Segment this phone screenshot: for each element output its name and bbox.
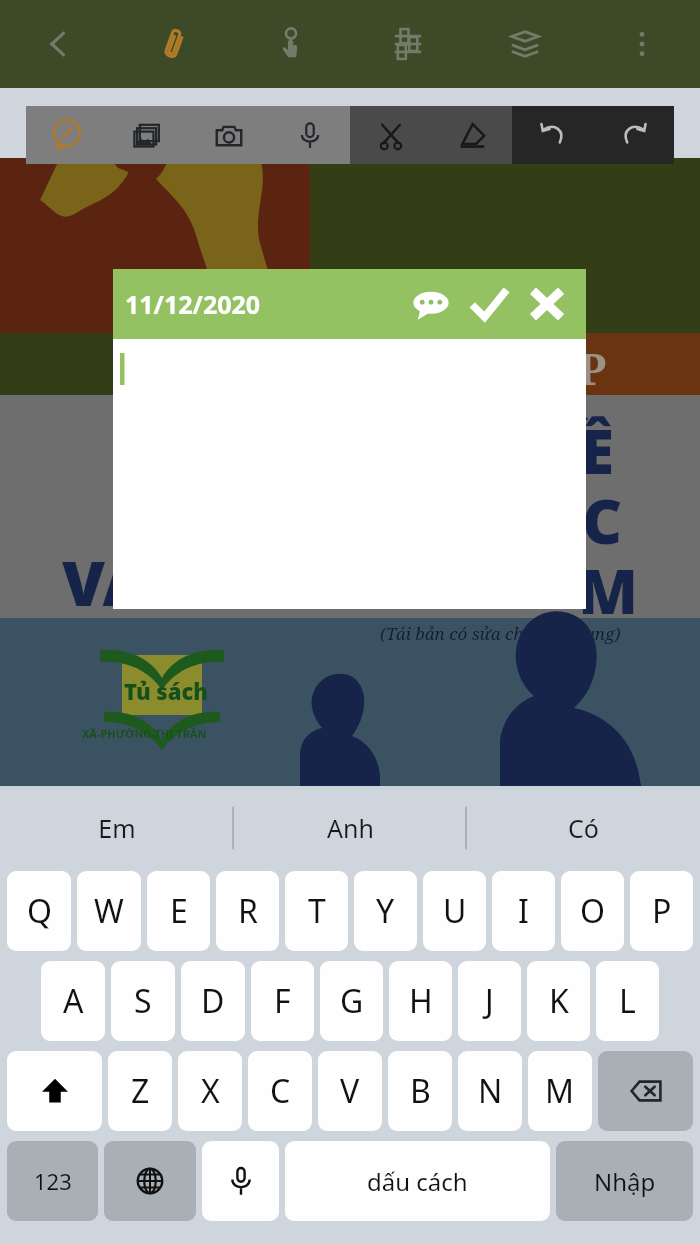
staticText: Y xyxy=(376,889,395,933)
staticText: 123 xyxy=(34,1166,72,1196)
button[interactable]: V xyxy=(318,1051,382,1131)
staticText: P xyxy=(652,889,672,933)
staticText: VA xyxy=(62,540,148,624)
button[interactable]: D xyxy=(181,961,245,1041)
button[interactable]: Nhập xyxy=(556,1141,693,1221)
button[interactable]: More options xyxy=(583,0,700,88)
button[interactable]: C xyxy=(248,1051,312,1131)
button[interactable]: Redo xyxy=(593,106,674,164)
button[interactable]: Camera xyxy=(188,106,269,164)
button[interactable]: Attach xyxy=(116,0,232,88)
staticText: Tủ sách xyxy=(124,676,209,706)
button[interactable]: Draw xyxy=(26,106,107,164)
button[interactable]: K xyxy=(527,961,590,1041)
button[interactable]: H xyxy=(389,961,452,1041)
staticText: M xyxy=(578,548,638,632)
staticText: Anh xyxy=(327,811,374,845)
staticText: T xyxy=(308,889,326,933)
button[interactable]: T xyxy=(285,871,348,951)
staticText: K xyxy=(549,979,569,1023)
staticText: O xyxy=(580,889,605,933)
button[interactable]: Touch mode xyxy=(232,0,349,88)
staticText: S xyxy=(134,979,152,1023)
staticText: M xyxy=(545,1069,575,1113)
button[interactable]: Voice input xyxy=(202,1141,279,1221)
staticText: X xyxy=(201,1069,220,1113)
button[interactable]: A xyxy=(41,961,105,1041)
button[interactable]: F xyxy=(251,961,314,1041)
button[interactable]: Erase xyxy=(431,106,512,164)
button[interactable]: J xyxy=(458,961,521,1041)
staticText: N xyxy=(478,1069,503,1113)
button[interactable]: 123 xyxy=(7,1141,98,1221)
staticText: Q xyxy=(27,889,52,933)
staticText: B xyxy=(410,1069,431,1113)
button[interactable]: Comment xyxy=(402,275,460,333)
button[interactable]: Shift xyxy=(7,1051,102,1131)
button[interactable] xyxy=(113,339,586,609)
button[interactable]: U xyxy=(423,871,486,951)
button[interactable]: Z xyxy=(108,1051,172,1131)
staticText: D xyxy=(201,979,225,1023)
button[interactable]: E xyxy=(147,871,210,951)
button[interactable]: X xyxy=(178,1051,242,1131)
button[interactable]: R xyxy=(216,871,279,951)
staticText: V xyxy=(340,1069,360,1113)
button[interactable]: Back xyxy=(0,0,116,88)
staticText: Em xyxy=(98,811,136,845)
staticText: E xyxy=(170,889,188,933)
staticText: W xyxy=(94,889,124,933)
button[interactable]: B xyxy=(388,1051,452,1131)
staticText: C xyxy=(582,478,623,562)
button[interactable]: Settings xyxy=(349,0,466,88)
button[interactable]: Voice xyxy=(269,106,350,164)
staticText: Có xyxy=(568,811,599,845)
button[interactable]: N xyxy=(458,1051,522,1131)
staticText: XÃ-PHƯỜNG-THỊ TRẤN xyxy=(82,726,207,741)
button[interactable]: Anh xyxy=(234,790,467,866)
button[interactable]: Close xyxy=(518,275,576,333)
button[interactable]: P xyxy=(630,871,693,951)
button[interactable]: Undo xyxy=(512,106,593,164)
staticText: R xyxy=(238,889,258,933)
staticText: G xyxy=(340,979,364,1023)
button[interactable]: Gallery xyxy=(107,106,188,164)
button[interactable]: Q xyxy=(7,871,71,951)
button[interactable]: Change language xyxy=(104,1141,196,1221)
staticText: Ề xyxy=(580,408,615,492)
button[interactable]: Layers xyxy=(466,0,583,88)
button[interactable]: M xyxy=(528,1051,592,1131)
button[interactable]: W xyxy=(77,871,141,951)
staticText: I xyxy=(518,889,529,933)
staticText: L xyxy=(619,979,636,1023)
staticText: C xyxy=(270,1069,291,1113)
staticText: F xyxy=(274,979,291,1023)
button[interactable]: Em xyxy=(0,790,234,866)
button[interactable]: S xyxy=(111,961,175,1041)
button[interactable]: Backspace xyxy=(598,1051,693,1131)
staticText: Nhập xyxy=(594,1165,656,1198)
staticText: P xyxy=(578,338,607,398)
button[interactable]: Save xyxy=(460,275,518,333)
button[interactable]: I xyxy=(492,871,555,951)
staticText: H xyxy=(409,979,433,1023)
staticText: dấu cách xyxy=(367,1165,468,1198)
staticText: J xyxy=(485,979,494,1023)
button[interactable]: Y xyxy=(354,871,417,951)
staticText: Z xyxy=(131,1069,150,1113)
button[interactable]: Có xyxy=(467,790,700,866)
button[interactable]: G xyxy=(320,961,383,1041)
button[interactable]: Cut xyxy=(350,106,431,164)
button[interactable]: L xyxy=(596,961,659,1041)
button[interactable]: dấu cách xyxy=(285,1141,550,1221)
staticText: U xyxy=(443,889,467,933)
staticText: A xyxy=(63,979,84,1023)
staticText: 11/12/2020 xyxy=(125,287,261,321)
staticText: (Tái bản có sửa chữa, bổ sung) xyxy=(380,622,621,645)
button[interactable]: O xyxy=(561,871,624,951)
